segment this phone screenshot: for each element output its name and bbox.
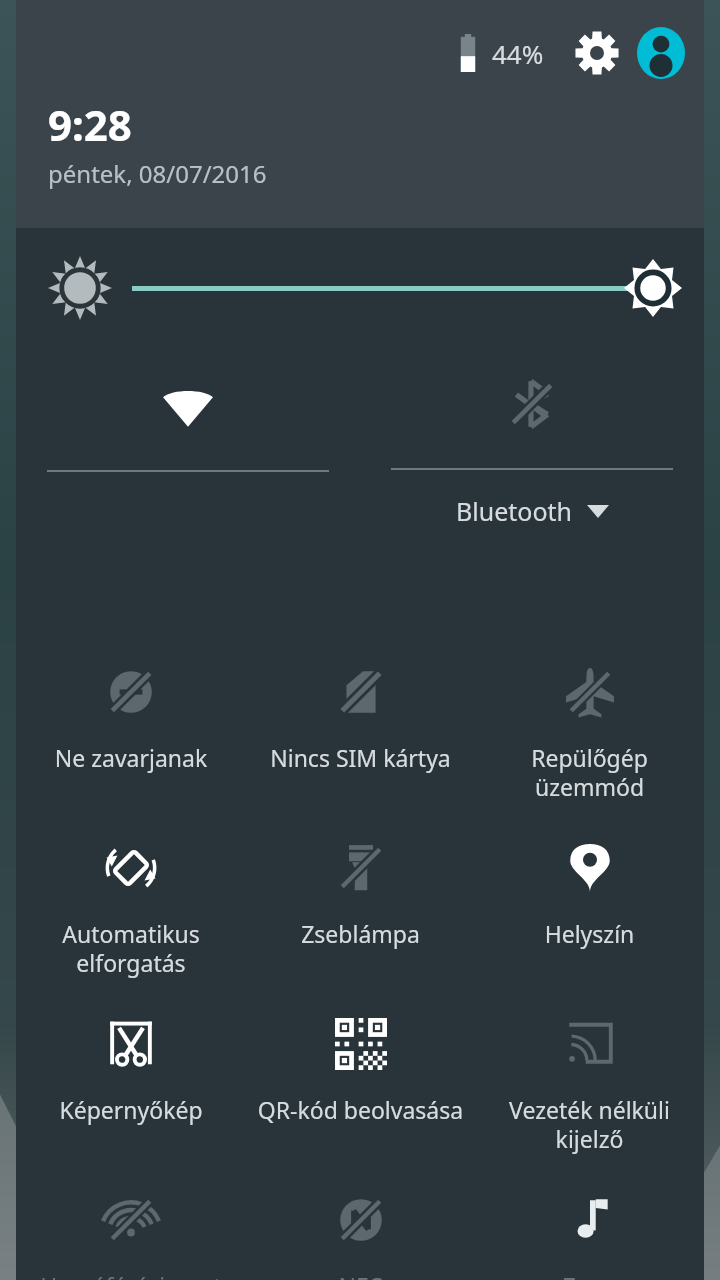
staticText: 9:28 bbox=[48, 96, 132, 153]
staticText: Automatikus elforgatás bbox=[16, 918, 246, 978]
staticText: Helyszín bbox=[475, 918, 704, 949]
button[interactable]: QR-kód beolvasása bbox=[246, 1000, 475, 1176]
button[interactable]: Brightness bbox=[16, 228, 704, 348]
button[interactable]: Ne zavarjanak bbox=[16, 648, 246, 824]
staticText: QR-kód beolvasása bbox=[246, 1094, 475, 1125]
button[interactable]: Bluetooth bbox=[360, 348, 704, 648]
button[interactable]: Settings bbox=[568, 24, 626, 82]
button[interactable]: Zene bbox=[475, 1176, 704, 1280]
staticText: 44% bbox=[492, 36, 544, 71]
staticText: péntek, 08/07/2016 bbox=[48, 157, 267, 190]
staticText: Képernyőkép bbox=[16, 1094, 246, 1125]
button[interactable]: Képernyőkép bbox=[16, 1000, 246, 1176]
staticText: Vezeték nélküli kijelző bbox=[475, 1094, 704, 1154]
staticText: Nincs SIM kártya bbox=[246, 742, 475, 773]
staticText: Hozzáférési pont bbox=[16, 1270, 246, 1280]
button[interactable]: Automatikus elforgatás bbox=[16, 824, 246, 1000]
staticText: Repülőgép üzemmód bbox=[475, 742, 704, 802]
staticText: Zseblámpa bbox=[246, 918, 475, 949]
button[interactable]: Wi-Fi bbox=[16, 348, 360, 648]
button[interactable]: NFC bbox=[246, 1176, 475, 1280]
button[interactable]: Nincs SIM kártya bbox=[246, 648, 475, 824]
staticText: Ne zavarjanak bbox=[16, 742, 246, 773]
button[interactable]: Zseblámpa bbox=[246, 824, 475, 1000]
button[interactable]: Hozzáférési pont bbox=[16, 1176, 246, 1280]
staticText: NFC bbox=[246, 1270, 475, 1280]
staticText: Zene bbox=[475, 1270, 704, 1280]
button[interactable]: User profile bbox=[632, 24, 690, 82]
button[interactable]: Vezeték nélküli kijelző bbox=[475, 1000, 704, 1176]
button[interactable]: Helyszín bbox=[475, 824, 704, 1000]
staticText: Bluetooth bbox=[456, 494, 573, 528]
button[interactable]: Repülőgép üzemmód bbox=[475, 648, 704, 824]
